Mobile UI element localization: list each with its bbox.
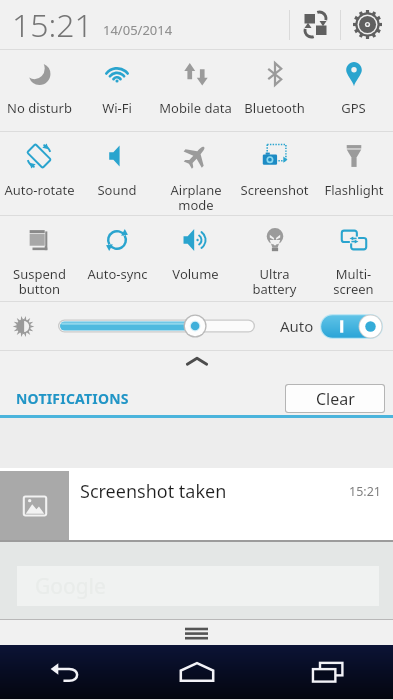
button[interactable]: Back [0, 645, 131, 699]
staticText: Auto [280, 316, 314, 336]
staticText: Screenshot taken [80, 479, 227, 504]
button[interactable]: Brightness [0, 302, 46, 350]
button[interactable]: Collapse panel [0, 351, 393, 381]
button[interactable]: Screenshot [235, 132, 314, 215]
staticText: Multi- screen [333, 265, 374, 298]
staticText: Flashlight [324, 181, 384, 199]
staticText: 15:21 [349, 483, 381, 500]
staticText: Airplane mode [170, 181, 222, 214]
button[interactable]: No disturb [0, 50, 78, 131]
button[interactable]: Ultra battery [235, 216, 314, 301]
button[interactable]: Screenshot taken [0, 468, 393, 540]
button[interactable]: Multi- screen [314, 216, 393, 301]
button[interactable]: Volume [156, 216, 235, 301]
button[interactable]: Sound [78, 132, 156, 215]
staticText: Wi-Fi [102, 99, 132, 117]
button[interactable]: Brightness slider [57, 309, 256, 343]
button[interactable]: Auto-sync [78, 216, 156, 301]
button[interactable]: Switch user [290, 0, 340, 49]
staticText: Ultra battery [252, 265, 297, 298]
button[interactable]: Home [131, 645, 262, 699]
staticText: Mobile data [159, 99, 232, 117]
button[interactable]: GPS [314, 50, 393, 131]
staticText: 14/05/2014 [103, 21, 173, 39]
button[interactable]: Bluetooth [235, 50, 314, 131]
staticText: Volume [172, 265, 219, 283]
button[interactable]: Auto brightness toggle [320, 314, 383, 339]
staticText: Auto-sync [87, 265, 148, 283]
staticText: GPS [341, 99, 366, 117]
staticText: Clear [316, 388, 355, 410]
button[interactable]: Recent apps [262, 645, 393, 699]
staticText: Auto-rotate [4, 181, 75, 199]
staticText: Bluetooth [244, 99, 305, 117]
button[interactable]: Settings [341, 0, 393, 49]
button[interactable]: Clear [286, 385, 384, 412]
staticText: 15:21 [12, 3, 93, 47]
button[interactable]: Airplane mode [156, 132, 235, 215]
button[interactable]: Mobile data [156, 50, 235, 131]
staticText: NOTIFICATIONS [16, 389, 129, 408]
staticText: Suspend button [13, 265, 66, 298]
staticText: Sound [97, 181, 137, 199]
button[interactable]: Suspend button [0, 216, 78, 301]
staticText: Screenshot [240, 181, 309, 199]
button[interactable]: Auto-rotate [0, 132, 78, 215]
button[interactable]: Wi-Fi [78, 50, 156, 131]
staticText: No disturb [7, 99, 72, 117]
button[interactable]: Drag handle [0, 620, 393, 645]
button[interactable]: Flashlight [314, 132, 393, 215]
